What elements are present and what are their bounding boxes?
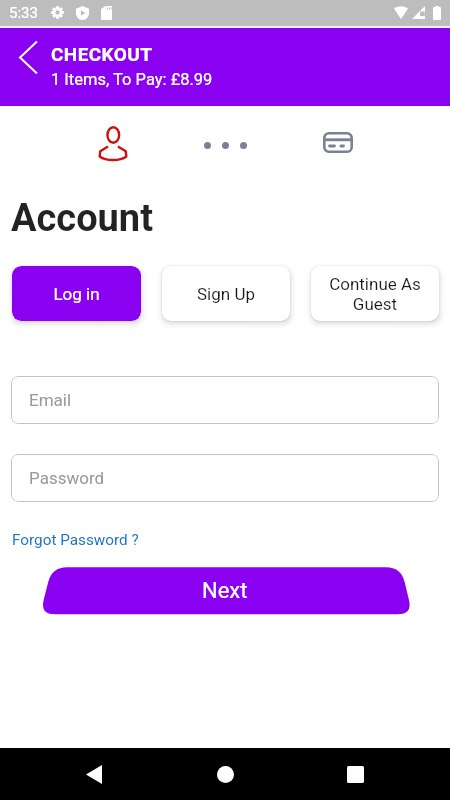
staticText: CHECKOUT — [51, 43, 153, 65]
button[interactable]: Payment step — [323, 132, 353, 153]
button[interactable]: Recent apps — [332, 751, 378, 797]
button[interactable]: Password — [11, 454, 439, 502]
button[interactable]: Email — [11, 376, 439, 424]
staticText: Password — [29, 468, 105, 488]
button[interactable]: Continue As Guest — [311, 266, 439, 321]
staticText: 5:33 — [9, 4, 38, 22]
staticText: Email — [29, 390, 72, 410]
button[interactable]: Back — [9, 28, 49, 68]
button[interactable]: Log in — [12, 266, 141, 321]
staticText: Sign Up — [197, 284, 255, 304]
staticText: 1 Items, To Pay: £8.99 — [51, 70, 213, 89]
staticText: Log in — [53, 284, 100, 304]
button[interactable]: Home — [202, 751, 248, 797]
staticText: Forgot Password ? — [12, 531, 139, 549]
staticText: Continue As Guest — [311, 274, 439, 314]
button[interactable]: Back — [71, 751, 117, 797]
button[interactable]: Account step — [98, 126, 128, 160]
staticText: Account — [11, 196, 154, 241]
button[interactable]: Next — [0, 563, 450, 619]
staticText: Next — [202, 578, 248, 604]
button[interactable]: Sign Up — [162, 266, 290, 321]
